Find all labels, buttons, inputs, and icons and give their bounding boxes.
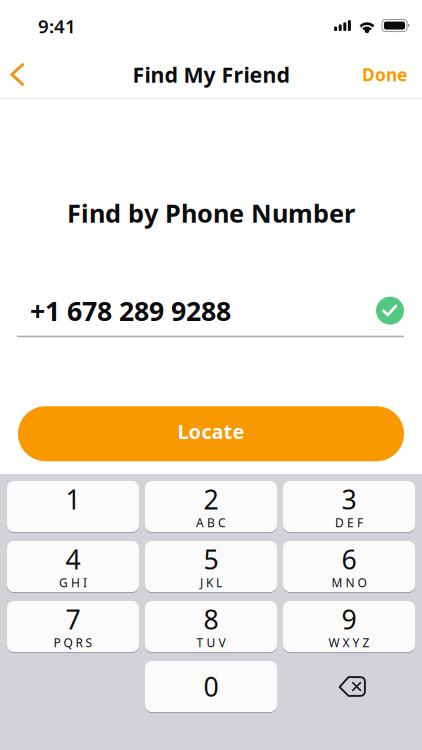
button[interactable]: 0 (145, 661, 277, 712)
staticText: P Q R S (53, 635, 92, 651)
staticText: A B C (196, 515, 226, 531)
button[interactable]: Back (0, 48, 38, 98)
staticText: 9:41 (38, 14, 76, 38)
button[interactable]: 8 (145, 601, 277, 652)
staticText: T U V (196, 635, 225, 651)
button[interactable]: 9 (283, 601, 415, 652)
button[interactable]: Done (346, 48, 422, 98)
staticText: Find by Phone Number (67, 196, 355, 230)
button[interactable]: 4 (7, 541, 139, 592)
staticText: 8 (203, 601, 218, 637)
button[interactable]: Delete (283, 661, 415, 712)
button[interactable]: 2 (145, 481, 277, 532)
staticText: Done (362, 63, 407, 86)
button[interactable]: 6 (283, 541, 415, 592)
staticText: Find My Friend (132, 60, 289, 89)
staticText: 5 (203, 541, 218, 577)
staticText: G H I (59, 575, 87, 591)
staticText: M N O (331, 575, 366, 591)
staticText: 2 (203, 481, 218, 517)
button[interactable]: Locate (18, 406, 404, 461)
staticText: Locate (177, 418, 244, 445)
staticText: W X Y Z (328, 635, 369, 651)
button[interactable]: 5 (145, 541, 277, 592)
staticText: 1 (65, 481, 80, 517)
staticText: 9 (341, 601, 356, 637)
button[interactable]: 3 (283, 481, 415, 532)
staticText: D E F (335, 515, 363, 531)
staticText: J K L (200, 575, 222, 591)
staticText: 4 (65, 541, 80, 577)
staticText: +1 678 289 9288 (30, 293, 231, 328)
button[interactable]: 1 (7, 481, 139, 532)
staticText: 7 (65, 601, 80, 637)
staticText: 6 (341, 541, 356, 577)
staticText: 3 (341, 481, 356, 517)
staticText: 0 (203, 669, 218, 704)
button[interactable]: 7 (7, 601, 139, 652)
